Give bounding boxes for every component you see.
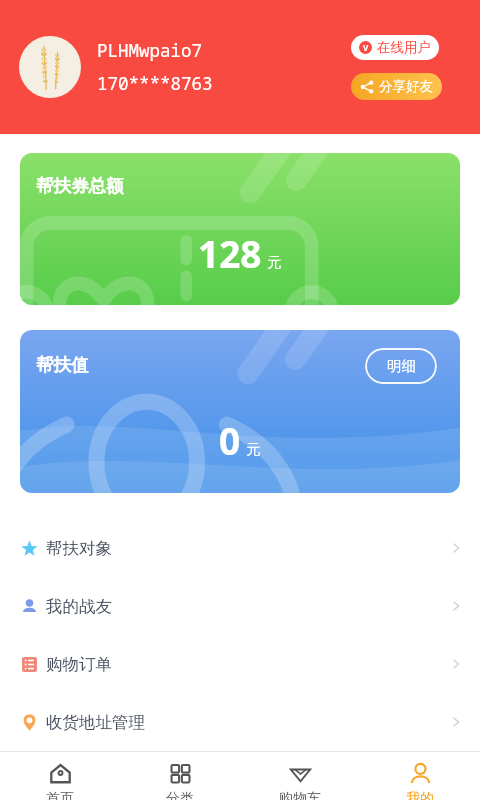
staticText: 帮扶券总额	[36, 175, 124, 197]
button[interactable]: 购物车	[240, 752, 360, 800]
staticText: 购物车	[279, 790, 321, 800]
button[interactable]: 我的战友	[0, 577, 480, 635]
button[interactable]: 明细	[365, 348, 437, 384]
staticText: 我的	[406, 790, 434, 800]
staticText: 分享好友	[379, 78, 433, 95]
staticText: 在线用户	[377, 39, 431, 56]
button[interactable]: 帮扶对象	[0, 519, 480, 577]
button[interactable]: Avatar	[19, 36, 81, 98]
button[interactable]: 帮扶券总额	[20, 153, 460, 305]
button[interactable]: V	[351, 35, 439, 60]
button[interactable]: 我的	[360, 752, 480, 800]
staticText: 170****8763	[97, 71, 213, 95]
staticText: 帮扶对象	[46, 538, 112, 559]
staticText: 收货地址管理	[46, 712, 145, 733]
staticText: 首页	[46, 790, 74, 800]
staticText: 帮扶值	[36, 354, 89, 376]
button[interactable]: 首页	[0, 752, 120, 800]
staticText: 明细	[387, 357, 416, 375]
staticText: 分类	[166, 790, 194, 800]
staticText: 我的战友	[46, 596, 112, 617]
button[interactable]: 收货地址管理	[0, 693, 480, 751]
staticText: 0	[219, 415, 241, 465]
staticText: PLHMwpaio7	[97, 38, 202, 62]
staticText: V	[363, 42, 369, 53]
staticText: 元	[267, 253, 282, 271]
staticText: 元	[246, 440, 261, 458]
button[interactable]: 分类	[120, 752, 240, 800]
button[interactable]: 购物订单	[0, 635, 480, 693]
staticText: 购物订单	[46, 654, 112, 675]
button[interactable]: 帮扶值	[20, 330, 460, 493]
staticText: 128	[198, 228, 262, 278]
button[interactable]: 分享好友	[351, 73, 442, 100]
